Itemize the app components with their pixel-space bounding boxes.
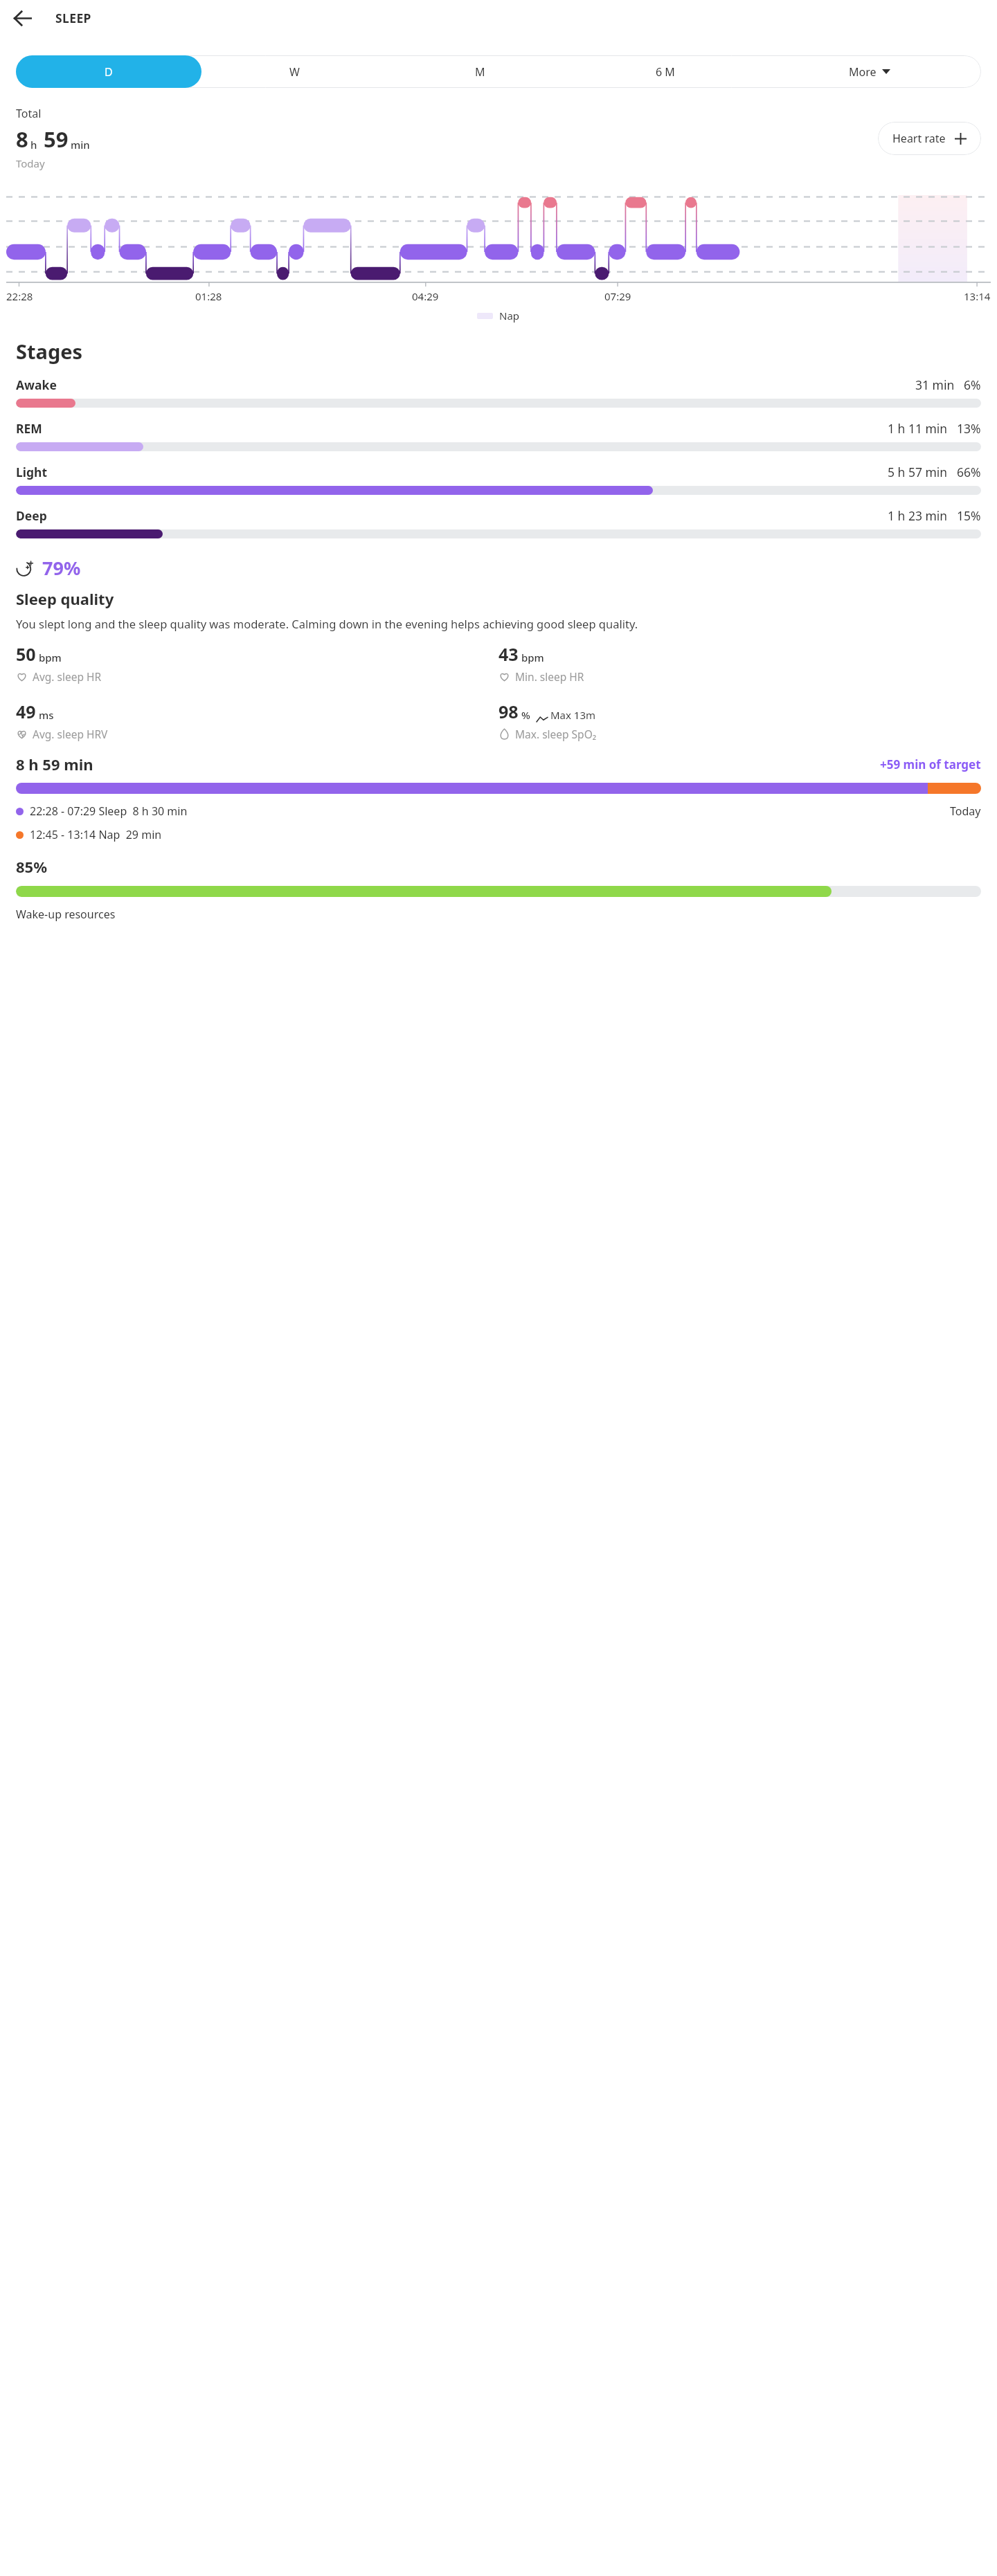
button[interactable]: Back <box>6 1 39 35</box>
staticText: 31 min <box>915 377 955 393</box>
staticText: Min. sleep HR <box>515 669 584 684</box>
staticText: 22:28 <box>6 289 33 303</box>
staticText: Heart rate <box>892 131 946 146</box>
staticText: ms <box>39 708 54 722</box>
staticText: 04:29 <box>412 289 439 303</box>
button[interactable]: 50 <box>16 642 498 684</box>
staticText: 8 h 59 min <box>16 754 93 774</box>
staticText: REM <box>16 420 42 437</box>
staticText: +59 min of target <box>880 756 981 772</box>
staticText: D <box>105 64 113 80</box>
button[interactable]: 49 <box>16 700 498 741</box>
staticText: Today <box>950 804 981 819</box>
button[interactable]: 22:28 - 07:29 Sleep 8 h 30 min <box>16 804 981 819</box>
staticText: Deep <box>16 507 47 524</box>
button[interactable]: M <box>387 55 573 88</box>
button[interactable]: D <box>16 55 201 88</box>
button[interactable]: Heart rate <box>878 122 981 155</box>
staticText: Nap <box>499 309 520 323</box>
staticText: Today <box>16 156 45 170</box>
staticText: bpm <box>39 651 62 664</box>
staticText: You slept long and the sleep quality was… <box>16 616 638 631</box>
staticText: 59 <box>44 125 69 154</box>
staticText: 79% <box>42 555 81 581</box>
staticText: Total <box>16 106 42 121</box>
staticText: 43 <box>498 642 519 666</box>
staticText: bpm <box>521 651 544 664</box>
staticText: 66% <box>957 464 981 480</box>
staticText: 85% <box>16 856 48 877</box>
staticText: 15% <box>957 507 981 524</box>
staticText: 1 h 11 min <box>888 420 948 437</box>
staticText: 6 M <box>656 64 675 80</box>
staticText: 49 <box>16 700 36 723</box>
staticText: min <box>71 138 90 152</box>
staticText: % <box>521 708 530 722</box>
staticText: 1 h 23 min <box>888 507 948 524</box>
staticText: 13:14 <box>964 289 991 303</box>
staticText: 8 <box>16 125 28 154</box>
staticText: Max. sleep SpO₂ <box>515 727 597 741</box>
button[interactable]: 98 <box>498 700 981 741</box>
staticText: 98 <box>498 700 519 723</box>
staticText: Awake <box>16 377 57 393</box>
staticText: SLEEP <box>55 10 91 26</box>
staticText: M <box>475 64 485 80</box>
staticText: 50 <box>16 642 36 666</box>
staticText: 12:45 - 13:14 Nap 29 min <box>30 827 162 842</box>
staticText: 6% <box>964 377 981 393</box>
button[interactable]: W <box>201 55 387 88</box>
staticText: Avg. sleep HR <box>33 669 102 684</box>
button[interactable]: 6 M <box>573 55 758 88</box>
staticText: Max 13m <box>550 708 596 722</box>
staticText: Avg. sleep HRV <box>33 727 108 741</box>
staticText: 5 h 57 min <box>888 464 948 480</box>
staticText: Sleep quality <box>16 588 114 609</box>
button[interactable]: REM <box>16 420 981 451</box>
staticText: 13% <box>957 420 981 437</box>
staticText: 07:29 <box>604 289 631 303</box>
staticText: h <box>30 138 37 152</box>
staticText: Stages <box>16 338 83 365</box>
button[interactable]: More <box>758 55 981 88</box>
staticText: 01:28 <box>195 289 222 303</box>
staticText: More <box>849 64 877 80</box>
button[interactable]: Light <box>16 464 981 495</box>
staticText: W <box>289 64 300 80</box>
button[interactable]: 12:45 - 13:14 Nap 29 min <box>16 827 981 842</box>
staticText: Wake-up resources <box>16 907 116 922</box>
button[interactable]: 43 <box>498 642 981 684</box>
button[interactable]: Deep <box>16 507 981 538</box>
staticText: Light <box>16 464 48 480</box>
button[interactable]: Awake <box>16 377 981 408</box>
staticText: 22:28 - 07:29 Sleep 8 h 30 min <box>30 804 188 819</box>
